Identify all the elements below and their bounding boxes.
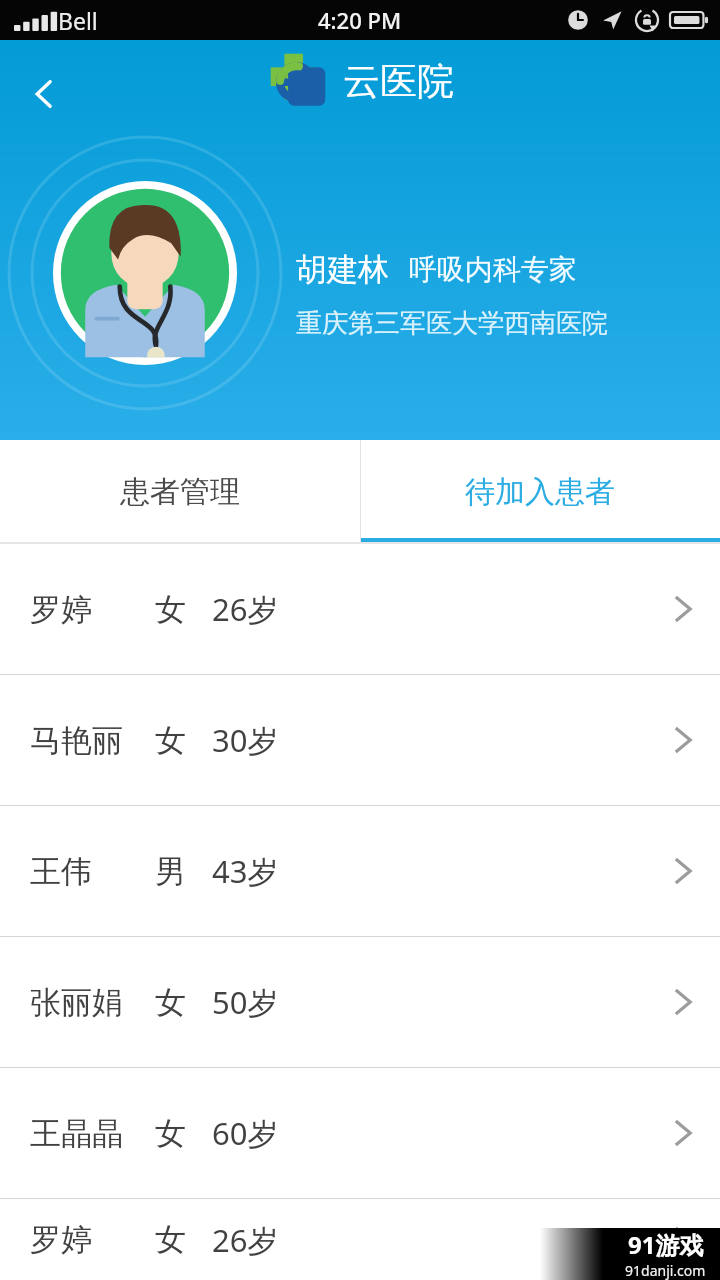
staticText: 罗婷 [30,1220,92,1259]
staticText: 30岁 [212,719,279,761]
staticText: 王晶晶 [30,1114,123,1153]
staticText: 50岁 [212,981,279,1023]
staticText: 女 [155,1114,186,1153]
button[interactable]: 张丽娟 [0,937,720,1067]
button[interactable]: 患者管理 [0,440,360,544]
staticText: 26岁 [212,588,279,630]
staticText: 张丽娟 [30,983,123,1022]
button[interactable]: 王晶晶 [0,1068,720,1198]
staticText: 91danji.com [625,1261,706,1280]
staticText: 女 [155,721,186,760]
staticText: 91游戏 [628,1228,704,1261]
button[interactable]: 罗婷 [0,544,720,674]
button[interactable]: 待加入患者 [360,440,720,544]
button[interactable]: Back [8,58,80,130]
staticText: 罗婷 [30,590,92,629]
staticText: 女 [155,590,186,629]
staticText: Bell [58,5,98,36]
staticText: 待加入患者 [465,473,615,511]
staticText: 26岁 [212,1219,279,1261]
staticText: 60岁 [212,1112,279,1154]
staticText: 患者管理 [120,473,240,511]
staticText: 女 [155,983,186,1022]
button[interactable]: 马艳丽 [0,675,720,805]
staticText: 男 [155,852,186,891]
staticText: 胡建林 [296,250,389,289]
staticText: 女 [155,1220,186,1259]
button[interactable]: 王伟 [0,806,720,936]
staticText: 王伟 [30,852,92,891]
staticText: 重庆第三军医大学西南医院 [296,307,608,340]
button[interactable]: 云医院 [267,50,454,112]
staticText: 43岁 [212,850,279,892]
staticText: 云医院 [343,58,454,105]
staticText: 马艳丽 [30,721,123,760]
button[interactable]: Doctor avatar [53,181,237,365]
button[interactable]: 罗婷 [0,1199,720,1280]
staticText: 呼吸内科专家 [409,252,577,287]
staticText: 4:20 PM [318,5,402,35]
